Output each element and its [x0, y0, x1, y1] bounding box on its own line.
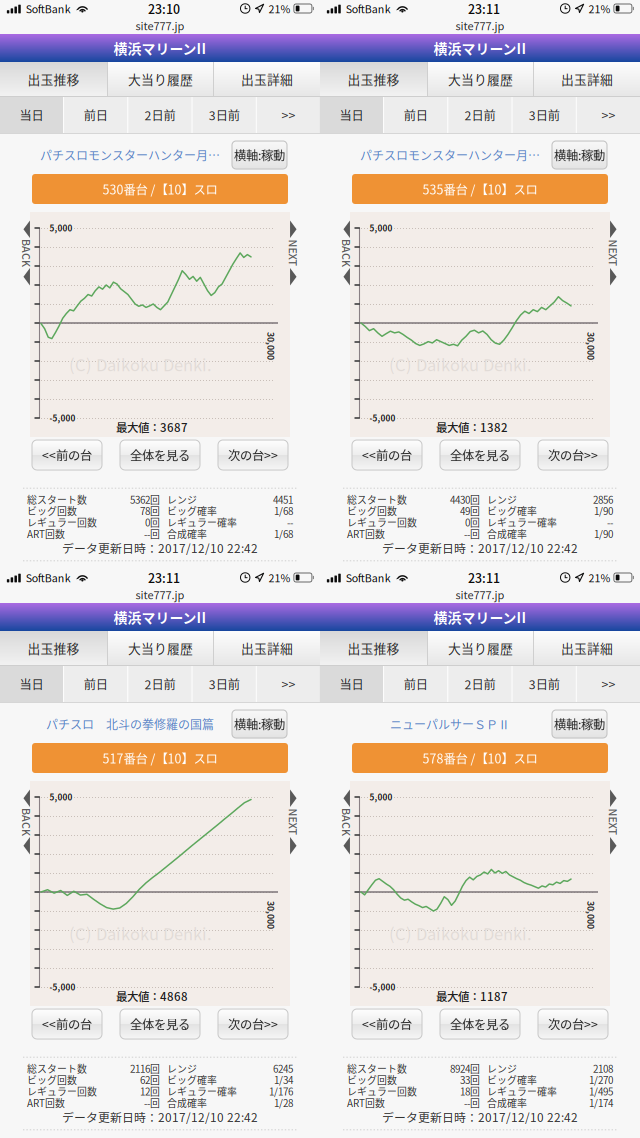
staticText: パチスロ 北斗の拳修羅の国篇: [46, 715, 214, 733]
staticText: 全体を見る: [130, 446, 190, 464]
staticText: ビッグ回数: [347, 504, 397, 518]
staticText: 大当り履歴: [448, 70, 513, 88]
button[interactable]: BACK: [342, 220, 351, 285]
staticText: -5,000: [369, 412, 395, 424]
button[interactable]: 前日: [64, 666, 127, 702]
button[interactable]: BACK: [22, 220, 31, 285]
staticText: データ更新日時：2017/12/10 22:42: [382, 539, 578, 556]
staticText: 23:10: [148, 0, 180, 17]
button[interactable]: 大当り履歴: [428, 62, 533, 96]
staticText: 23:11: [468, 568, 500, 586]
staticText: 3日前: [529, 675, 560, 693]
staticText: レンジ: [487, 1061, 517, 1076]
button[interactable]: NEXT: [289, 789, 298, 854]
button[interactable]: NEXT: [609, 220, 618, 285]
button[interactable]: 出玉推移: [0, 631, 107, 665]
staticText: 49回: [460, 504, 480, 518]
button[interactable]: 横軸:稼動: [232, 710, 287, 738]
staticText: ART回数: [27, 526, 65, 541]
staticText: 横浜マリーンII: [433, 607, 526, 627]
staticText: 大当り履歴: [448, 639, 513, 657]
button[interactable]: 出玉推移: [320, 62, 427, 96]
button[interactable]: <<前の台: [352, 440, 422, 470]
button[interactable]: >>: [577, 666, 640, 702]
button[interactable]: 2日前: [448, 97, 512, 133]
staticText: 出玉推移: [27, 639, 79, 657]
button[interactable]: 2日前: [448, 666, 512, 702]
button[interactable]: 次の台>>: [218, 1009, 288, 1039]
button[interactable]: 全体を見る: [120, 440, 200, 470]
button[interactable]: 次の台>>: [538, 440, 608, 470]
button[interactable]: 530番台 /【10】スロ: [32, 174, 288, 204]
button[interactable]: 出玉詳細: [214, 62, 320, 96]
button[interactable]: 次の台>>: [538, 1009, 608, 1039]
staticText: 総スタート数: [27, 492, 87, 507]
staticText: 3日前: [209, 106, 240, 124]
button[interactable]: >>: [577, 97, 640, 133]
button[interactable]: 517番台 /【10】スロ: [32, 743, 288, 773]
button[interactable]: 横軸:稼動: [232, 141, 287, 169]
staticText: 21%: [268, 1, 290, 16]
button[interactable]: 3日前: [193, 97, 256, 133]
button[interactable]: パチスロモンスターハンター月…: [40, 146, 220, 164]
staticText: -5,000: [369, 981, 395, 993]
button[interactable]: 前日: [384, 97, 447, 133]
button[interactable]: 出玉詳細: [534, 631, 640, 665]
button[interactable]: NEXT: [609, 789, 618, 854]
staticText: 5362回: [130, 492, 160, 507]
button[interactable]: 出玉推移: [320, 631, 427, 665]
button[interactable]: 2日前: [128, 666, 192, 702]
button[interactable]: 578番台 /【10】スロ: [352, 743, 608, 773]
staticText: NEXT: [280, 814, 307, 830]
button[interactable]: >>: [257, 666, 320, 702]
button[interactable]: 当日: [320, 666, 383, 702]
button[interactable]: NEXT: [289, 220, 298, 285]
staticText: ビッグ確率: [167, 1073, 217, 1087]
button[interactable]: 出玉推移: [0, 62, 107, 96]
button[interactable]: 全体を見る: [440, 1009, 520, 1039]
button[interactable]: 当日: [0, 666, 63, 702]
button[interactable]: <<前の台: [32, 440, 102, 470]
button[interactable]: 2日前: [128, 97, 192, 133]
button[interactable]: 当日: [0, 97, 63, 133]
staticText: ビッグ確率: [167, 504, 217, 518]
staticText: データ更新日時：2017/12/10 22:42: [382, 1108, 578, 1125]
staticText: NEXT: [280, 245, 307, 261]
button[interactable]: <<前の台: [352, 1009, 422, 1039]
button[interactable]: 大当り履歴: [108, 62, 213, 96]
button[interactable]: >>: [257, 97, 320, 133]
staticText: 517番台 /【10】スロ: [102, 749, 217, 767]
button[interactable]: 大当り履歴: [428, 631, 533, 665]
button[interactable]: 3日前: [513, 97, 576, 133]
button[interactable]: 前日: [384, 666, 447, 702]
button[interactable]: ニューパルサーＳＰⅡ: [390, 715, 510, 733]
staticText: 全体を見る: [450, 446, 510, 464]
staticText: 5,000: [369, 222, 392, 234]
button[interactable]: 大当り履歴: [108, 631, 213, 665]
button[interactable]: 3日前: [193, 666, 256, 702]
button[interactable]: パチスロモンスターハンター月…: [360, 146, 540, 164]
staticText: BACK: [13, 814, 41, 830]
staticText: 横軸:稼動: [554, 715, 605, 733]
button[interactable]: 全体を見る: [120, 1009, 200, 1039]
button[interactable]: BACK: [22, 789, 31, 854]
button[interactable]: 次の台>>: [218, 440, 288, 470]
button[interactable]: 横軸:稼動: [552, 710, 607, 738]
staticText: 前日: [84, 675, 108, 693]
button[interactable]: 出玉詳細: [214, 631, 320, 665]
staticText: 横浜マリーンII: [433, 38, 526, 58]
staticText: 前日: [84, 106, 108, 124]
button[interactable]: 全体を見る: [440, 440, 520, 470]
button[interactable]: <<前の台: [32, 1009, 102, 1039]
staticText: 18回: [460, 1084, 480, 1098]
button[interactable]: 当日: [320, 97, 383, 133]
staticText: site777.jp: [455, 17, 504, 33]
button[interactable]: 横軸:稼動: [552, 141, 607, 169]
staticText: 出玉詳細: [241, 70, 293, 88]
button[interactable]: 出玉詳細: [534, 62, 640, 96]
button[interactable]: 3日前: [513, 666, 576, 702]
button[interactable]: 535番台 /【10】スロ: [352, 174, 608, 204]
button[interactable]: 前日: [64, 97, 127, 133]
button[interactable]: パチスロ 北斗の拳修羅の国篇: [46, 715, 214, 733]
button[interactable]: BACK: [342, 789, 351, 854]
